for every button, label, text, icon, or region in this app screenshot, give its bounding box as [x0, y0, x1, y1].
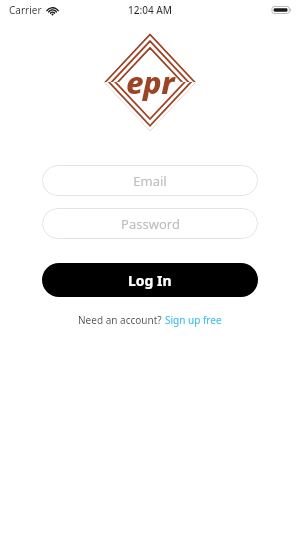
staticText: Log In [128, 271, 172, 290]
button[interactable]: Sign up free [165, 313, 222, 327]
staticText: Need an account? [78, 313, 165, 327]
button[interactable]: Password [42, 208, 258, 239]
staticText: 12:04 AM [128, 3, 172, 17]
button[interactable]: Log In [42, 263, 258, 297]
staticText: epr [126, 61, 175, 103]
staticText: Password [121, 215, 180, 233]
button[interactable]: Email [42, 165, 258, 196]
staticText: Sign up free [165, 313, 222, 327]
staticText: Email [133, 172, 167, 190]
staticText: Carrier [9, 3, 42, 17]
